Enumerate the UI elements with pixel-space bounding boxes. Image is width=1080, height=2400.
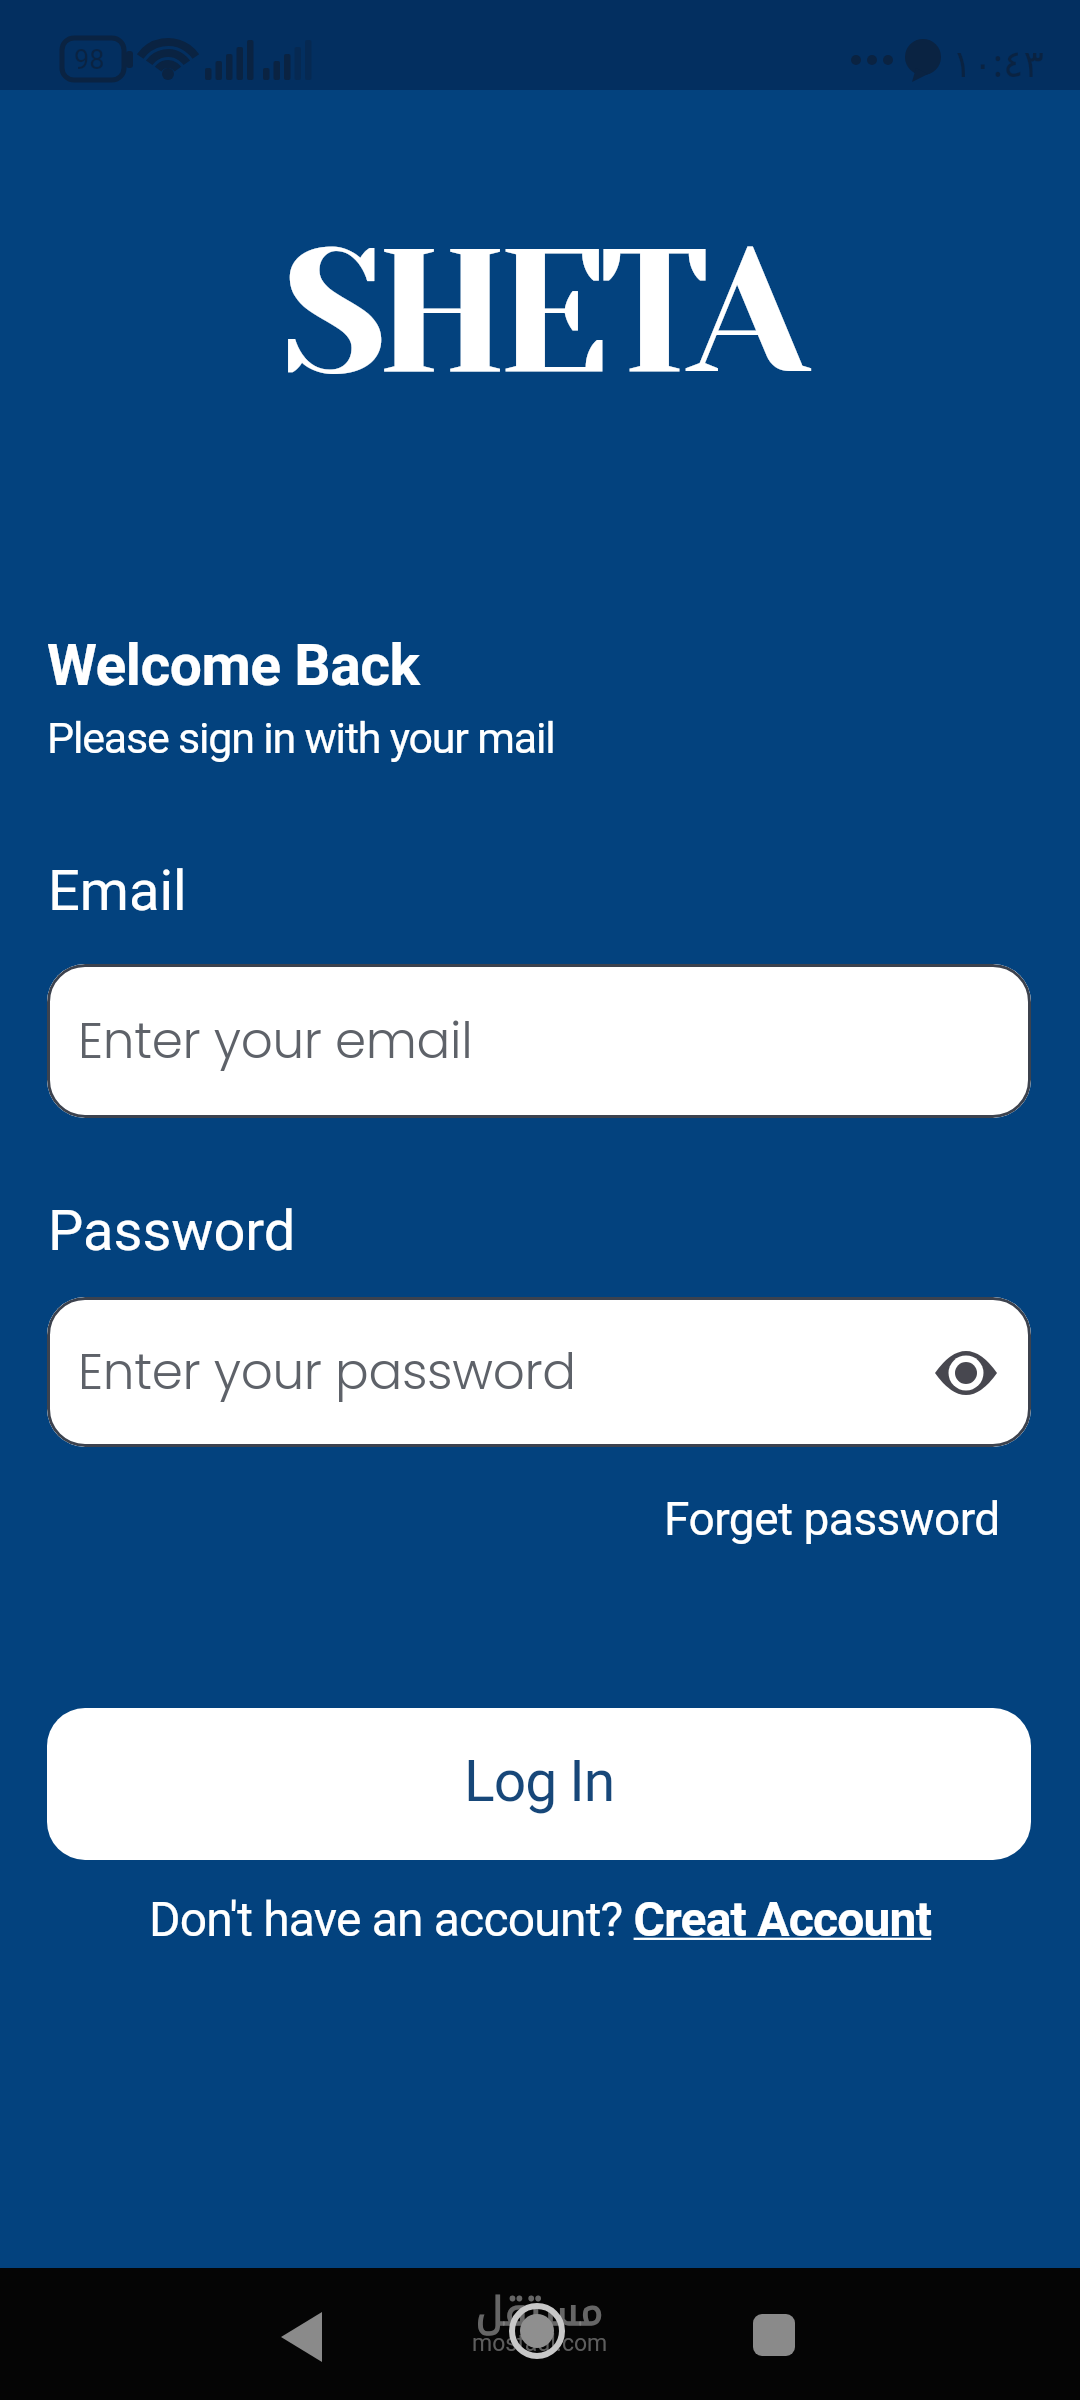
button[interactable]: Log In xyxy=(47,1708,1031,1860)
staticText: Password xyxy=(48,1198,296,1264)
staticText: Email xyxy=(48,858,187,924)
button[interactable]: Don't have an account? Creat Account xyxy=(149,1891,932,1947)
button[interactable]: Forget password xyxy=(664,1492,1000,1546)
staticText: mostaql.com xyxy=(472,2330,608,2357)
button[interactable]: Enter your password xyxy=(47,1297,1031,1447)
button[interactable] xyxy=(934,1340,998,1404)
staticText: Please sign in with your mail xyxy=(47,713,555,763)
staticText: SHETA xyxy=(282,212,798,413)
staticText: 98 xyxy=(74,44,105,76)
button[interactable] xyxy=(751,2312,801,2362)
button[interactable] xyxy=(270,2306,330,2366)
staticText: مستقل xyxy=(476,2274,604,2350)
staticText: Enter your email xyxy=(78,1006,473,1076)
button[interactable] xyxy=(506,2300,568,2362)
staticText: Log In xyxy=(464,1748,615,1815)
staticText: Welcome Back xyxy=(47,632,420,699)
staticText: Enter your password xyxy=(78,1337,576,1407)
button[interactable]: Enter your email xyxy=(47,964,1031,1118)
staticText: ١٠:٤٣ xyxy=(952,36,1044,88)
